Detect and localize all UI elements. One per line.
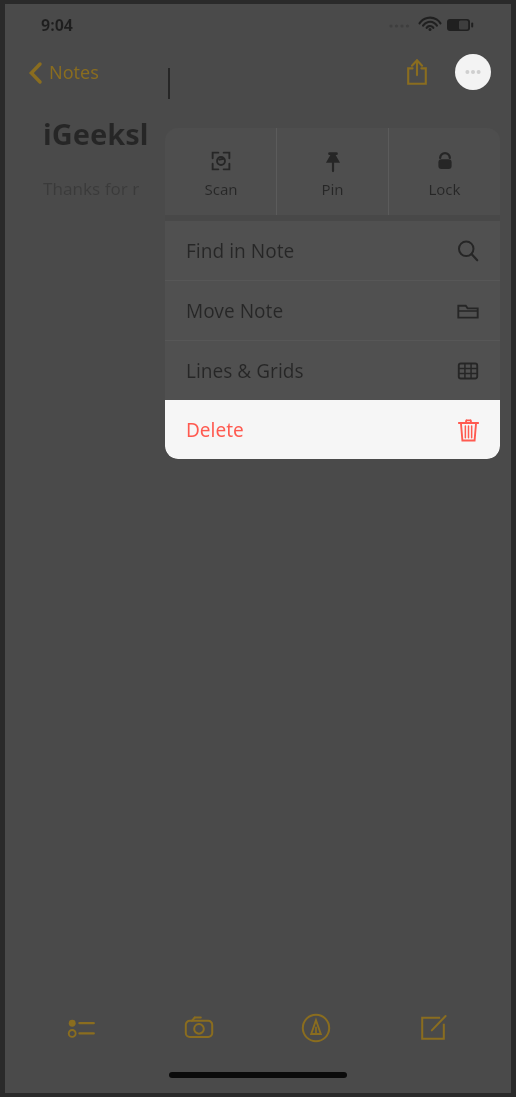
button[interactable]: Camera (141, 1000, 257, 1056)
button[interactable]: Checklist (25, 1000, 141, 1056)
button[interactable]: Move Note (165, 281, 500, 340)
staticText: iGeeksl (43, 114, 149, 153)
button[interactable]: Share (397, 52, 437, 92)
staticText: 9:04 (41, 14, 73, 36)
staticText: Thanks for r (43, 177, 140, 200)
staticText: Lock (428, 179, 461, 199)
button[interactable]: Delete (165, 400, 500, 459)
staticText: Pin (321, 179, 344, 199)
button[interactable]: More options (455, 54, 491, 90)
button[interactable]: Pin (277, 128, 388, 215)
button[interactable]: Markup (257, 1000, 374, 1056)
button[interactable]: Scan (165, 128, 276, 215)
button[interactable]: Lock (389, 128, 500, 215)
staticText: Find in Note (186, 238, 295, 264)
button[interactable]: New note (374, 1000, 491, 1056)
staticText: Move Note (186, 298, 284, 324)
staticText: Scan (204, 179, 238, 199)
button[interactable]: Find in Note (165, 221, 500, 280)
staticText: Delete (186, 417, 244, 443)
button[interactable]: Lines & Grids (165, 341, 500, 400)
staticText: Notes (49, 60, 99, 85)
staticText: Lines & Grids (186, 358, 304, 384)
button[interactable]: Notes (25, 54, 103, 91)
